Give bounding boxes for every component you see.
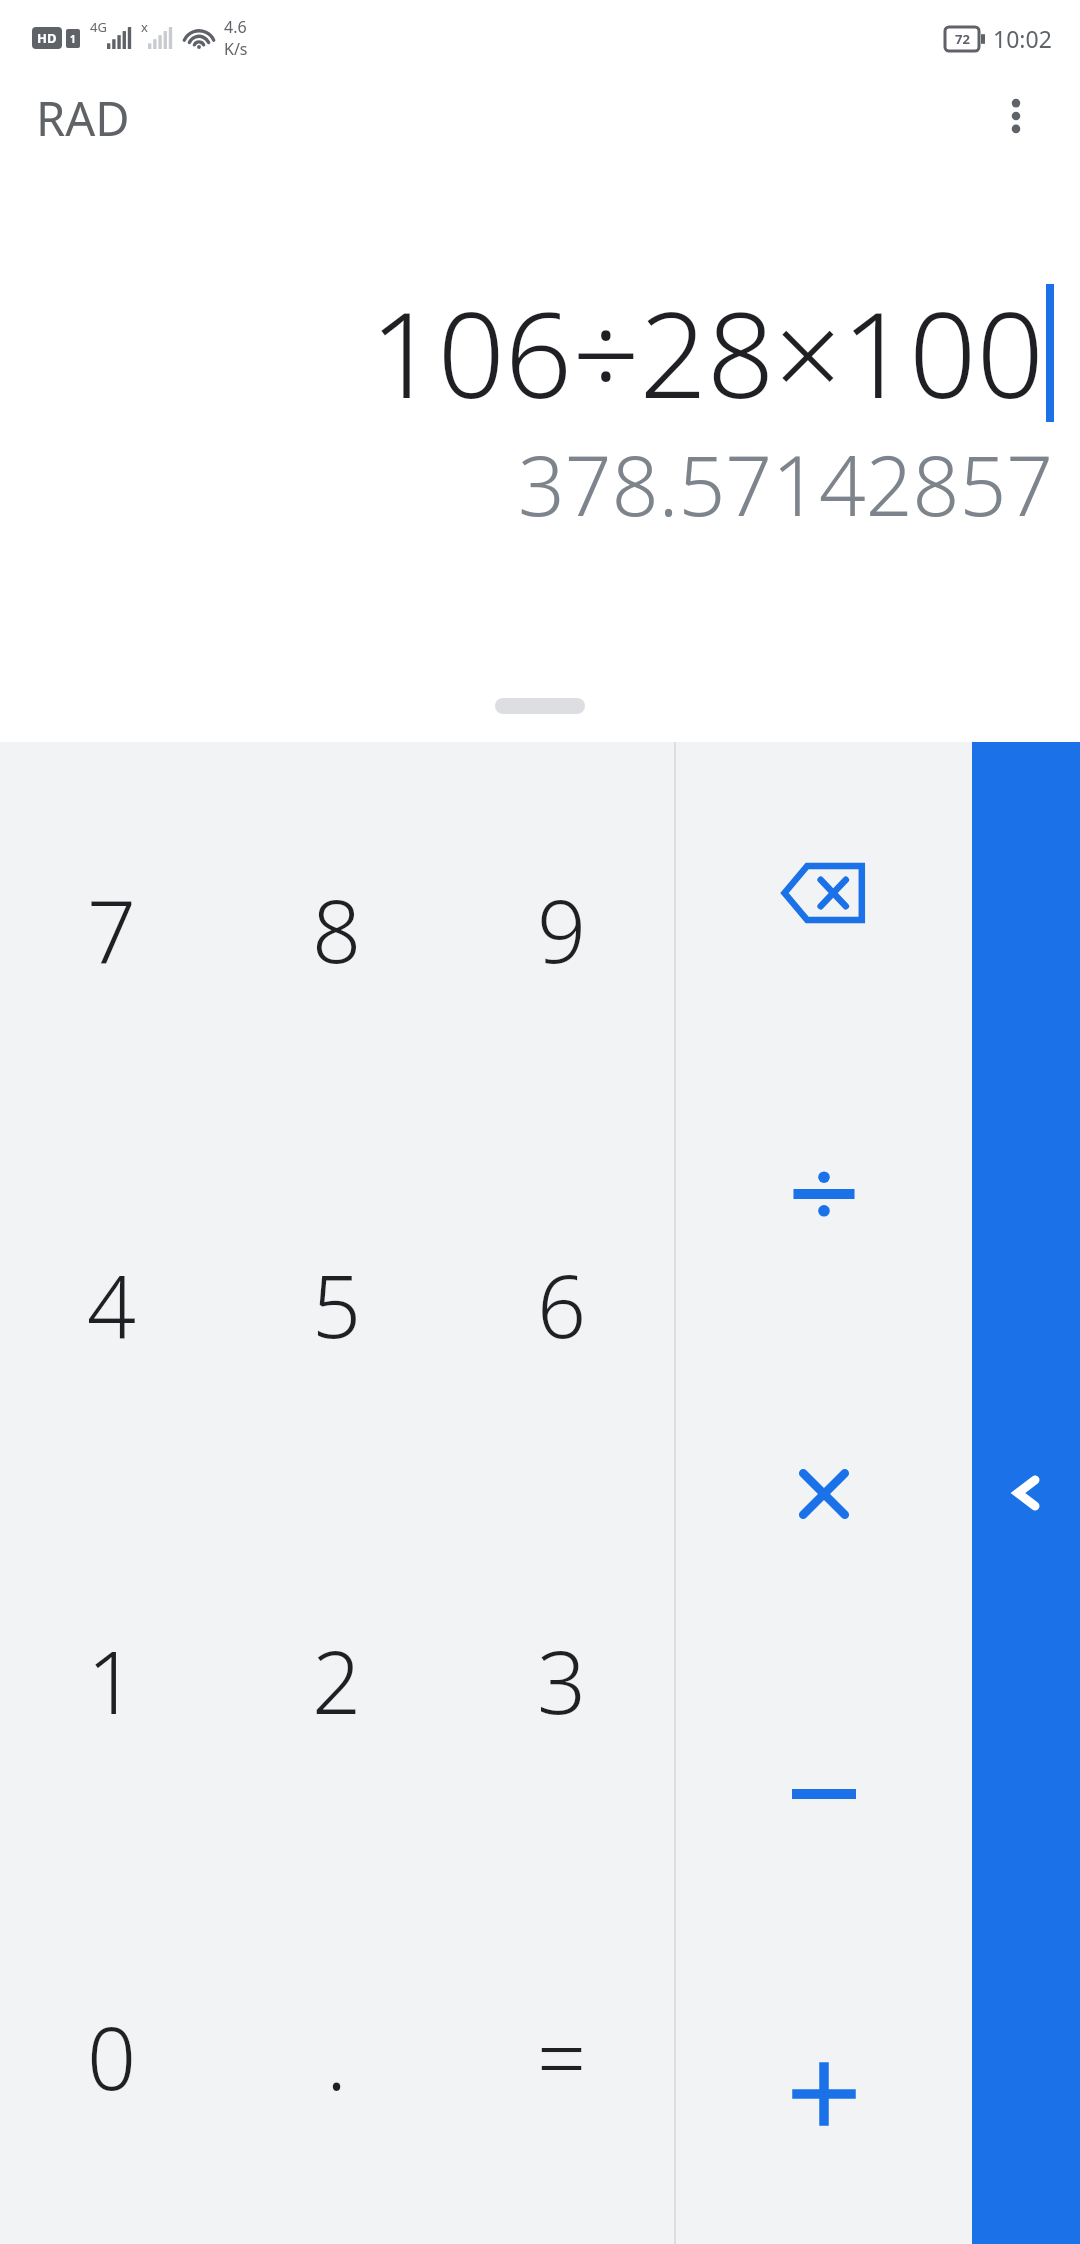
button[interactable]: Backspace — [676, 742, 972, 1043]
staticText: 9 — [537, 871, 587, 988]
staticText: 1 — [87, 1622, 137, 1739]
staticText: 5 — [312, 1246, 362, 1363]
staticText: 4.6 — [224, 16, 247, 38]
button[interactable]: Plus — [676, 1944, 972, 2244]
staticText: 378.57142857 — [518, 428, 1054, 540]
button[interactable]: Minus — [676, 1644, 972, 1944]
staticText: K/s — [224, 38, 248, 60]
button[interactable]: 3 — [449, 1492, 674, 1868]
staticText: 1 — [70, 32, 76, 46]
staticText: . — [326, 1998, 347, 2115]
button[interactable]: 7 — [0, 742, 224, 1117]
staticText: 10:02 — [993, 23, 1052, 54]
button[interactable]: 0 — [0, 1868, 224, 2244]
button[interactable]: 8 — [224, 742, 449, 1117]
staticText: 4 — [87, 1246, 137, 1363]
staticText: 106÷28×100 — [370, 272, 1044, 433]
button[interactable]: Multiply — [676, 1344, 972, 1644]
staticText: 4G — [90, 18, 107, 36]
staticText: HD — [37, 29, 57, 47]
staticText: 7 — [87, 871, 137, 988]
staticText: = — [537, 1998, 587, 2115]
staticText: RAD — [36, 86, 130, 150]
staticText: 3 — [537, 1622, 587, 1739]
button[interactable]: More options — [976, 76, 1056, 156]
button[interactable]: 4 — [0, 1117, 224, 1492]
button[interactable]: 9 — [449, 742, 674, 1117]
button[interactable]: 6 — [449, 1117, 674, 1492]
button[interactable]: 2 — [224, 1492, 449, 1868]
button[interactable]: RAD — [36, 86, 130, 150]
staticText: x — [141, 18, 148, 36]
staticText: 72 — [955, 30, 970, 48]
button[interactable]: Divide — [676, 1043, 972, 1344]
staticText: 8 — [312, 871, 362, 988]
staticText: 6 — [537, 1246, 587, 1363]
button[interactable]: . — [224, 1868, 449, 2244]
button[interactable]: Show history — [972, 742, 1080, 2244]
button[interactable]: = — [449, 1868, 674, 2244]
button[interactable]: Drag handle — [495, 698, 585, 714]
button[interactable]: 5 — [224, 1117, 449, 1492]
staticText: 0 — [87, 1998, 137, 2115]
button[interactable]: 1 — [0, 1492, 224, 1868]
staticText: 2 — [312, 1622, 362, 1739]
